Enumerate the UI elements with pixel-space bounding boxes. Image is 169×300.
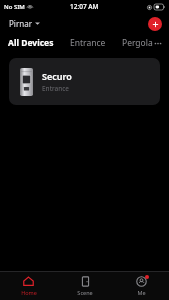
staticText: All Devices (8, 37, 54, 49)
button[interactable]: Scene (57, 272, 113, 300)
button[interactable]: Securo (9, 58, 160, 105)
button[interactable]: Pergola (121, 35, 154, 51)
button[interactable]: All Devices (7, 35, 55, 51)
button[interactable]: More tabs (154, 36, 162, 50)
staticText: Me (137, 289, 146, 296)
staticText: 12:07 AM (70, 2, 99, 11)
staticText: Home (21, 289, 37, 296)
staticText: Securo (42, 70, 72, 82)
staticText: Scene (77, 289, 93, 296)
staticText: Entrance (42, 84, 69, 93)
button[interactable]: Pirnar (7, 16, 42, 31)
staticText: Entrance (70, 37, 106, 49)
button[interactable]: Me (113, 272, 169, 300)
button[interactable]: Entrance (69, 35, 107, 51)
button[interactable]: Add device (148, 17, 162, 31)
button[interactable]: Home (0, 272, 57, 300)
staticText: No SIM (4, 3, 25, 11)
staticText: Pirnar (9, 18, 32, 29)
staticText: Pergola (122, 37, 153, 49)
